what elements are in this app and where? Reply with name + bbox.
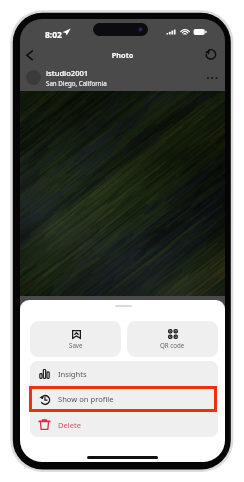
staticText: Delete <box>58 420 82 430</box>
staticText: QR code <box>160 341 185 349</box>
staticText: San Diego, California <box>46 79 107 87</box>
staticText: 8:02 <box>45 29 62 41</box>
staticText: Save <box>69 341 83 349</box>
staticText: Show on profile <box>58 394 114 404</box>
button[interactable]: Back <box>20 42 42 64</box>
button[interactable]: Show on profile <box>30 386 218 412</box>
button[interactable]: Save <box>30 321 121 357</box>
button[interactable]: istudio2001 <box>20 64 225 91</box>
button[interactable]: History <box>200 42 222 64</box>
button[interactable]: More options <box>204 68 224 88</box>
staticText: istudio2001 <box>46 68 89 78</box>
staticText: Insights <box>58 369 87 379</box>
button[interactable]: Delete <box>30 412 218 437</box>
staticText: Photo <box>20 50 225 60</box>
button[interactable]: QR code <box>127 321 218 357</box>
button[interactable]: Insights <box>30 361 218 386</box>
